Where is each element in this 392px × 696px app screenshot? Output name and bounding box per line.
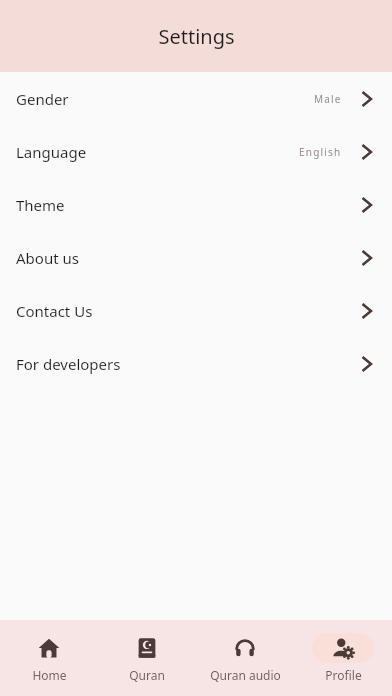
staticText: For developers bbox=[16, 354, 121, 374]
staticText: Profile bbox=[325, 667, 362, 683]
staticText: Settings bbox=[158, 23, 235, 50]
staticText: Theme bbox=[16, 195, 65, 215]
staticText: Quran bbox=[129, 667, 165, 683]
staticText: Quran audio bbox=[210, 667, 281, 683]
button[interactable]: Quran bbox=[98, 633, 196, 683]
button[interactable]: For developers bbox=[0, 337, 392, 390]
staticText: About us bbox=[16, 248, 79, 268]
staticText: Language bbox=[16, 142, 87, 162]
button[interactable]: Profile bbox=[294, 633, 392, 683]
button[interactable]: Home bbox=[0, 633, 98, 683]
staticText: Home bbox=[32, 667, 67, 683]
button[interactable]: Language bbox=[0, 125, 392, 178]
button[interactable]: Quran audio bbox=[196, 633, 294, 683]
staticText: English bbox=[299, 145, 342, 159]
staticText: Male bbox=[314, 92, 342, 106]
button[interactable]: Theme bbox=[0, 178, 392, 231]
button[interactable]: About us bbox=[0, 231, 392, 284]
staticText: Gender bbox=[16, 89, 69, 109]
button[interactable]: Gender bbox=[0, 72, 392, 125]
staticText: Contact Us bbox=[16, 301, 93, 321]
button[interactable]: Contact Us bbox=[0, 284, 392, 337]
